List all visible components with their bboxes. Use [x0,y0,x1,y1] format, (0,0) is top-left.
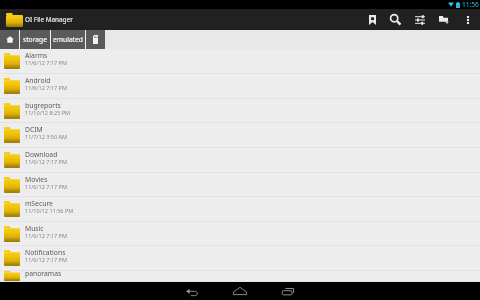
staticText: 11:56 [462,0,479,9]
staticText: panoramas [25,269,62,278]
staticText: DCIM [25,125,43,134]
staticText: 11/6/12 7:17 PM [25,256,67,263]
staticText: Android [25,76,51,85]
staticText: 11/10/12 11:56 PM [25,207,74,214]
button[interactable]: New folder [433,9,455,30]
button[interactable]: Storage device [86,30,105,49]
staticText: mSecure [25,199,53,208]
button[interactable]: bugreports [0,99,480,123]
staticText: Music [25,224,44,233]
button[interactable]: Home [0,30,19,49]
button[interactable]: Android [0,74,480,99]
staticText: bugreports [25,101,61,110]
staticText: 11/7/12 3:50 AM [25,133,68,140]
button[interactable]: panoramas [0,271,480,282]
staticText: Notifications [25,248,66,257]
staticText: storage [23,35,47,44]
button[interactable]: Back [180,282,204,300]
staticText: 11/6/12 7:17 PM [25,59,67,66]
button[interactable]: Home [227,282,253,300]
button[interactable]: More options [457,9,479,30]
button[interactable]: Music [0,222,480,246]
button[interactable]: storage [20,30,50,49]
staticText: OI File Manager [25,15,73,24]
staticText: 11/6/12 7:17 PM [25,84,67,91]
staticText: 11/6/12 7:17 PM [25,277,67,278]
staticText: emulated [53,35,83,44]
button[interactable]: Download [0,148,480,173]
button[interactable]: Notifications [0,246,480,271]
staticText: 11/6/12 7:17 PM [25,183,67,190]
button[interactable]: Recents [276,282,300,300]
button[interactable]: DCIM [0,123,480,148]
staticText: 11/6/12 7:17 PM [25,232,67,239]
button[interactable]: Movies [0,173,480,197]
staticText: 11/10/12 8:25 PM [25,109,71,116]
button[interactable]: Sort [409,9,431,30]
staticText: Download [25,150,58,159]
button[interactable]: mSecure [0,197,480,222]
button[interactable]: Search [384,9,406,30]
button[interactable]: Bookmarks [361,9,383,30]
button[interactable]: Alarms [0,49,480,74]
staticText: 11/6/12 7:17 PM [25,158,67,165]
staticText: Movies [25,175,48,184]
button[interactable]: emulated [51,30,85,49]
staticText: Alarms [25,51,48,60]
